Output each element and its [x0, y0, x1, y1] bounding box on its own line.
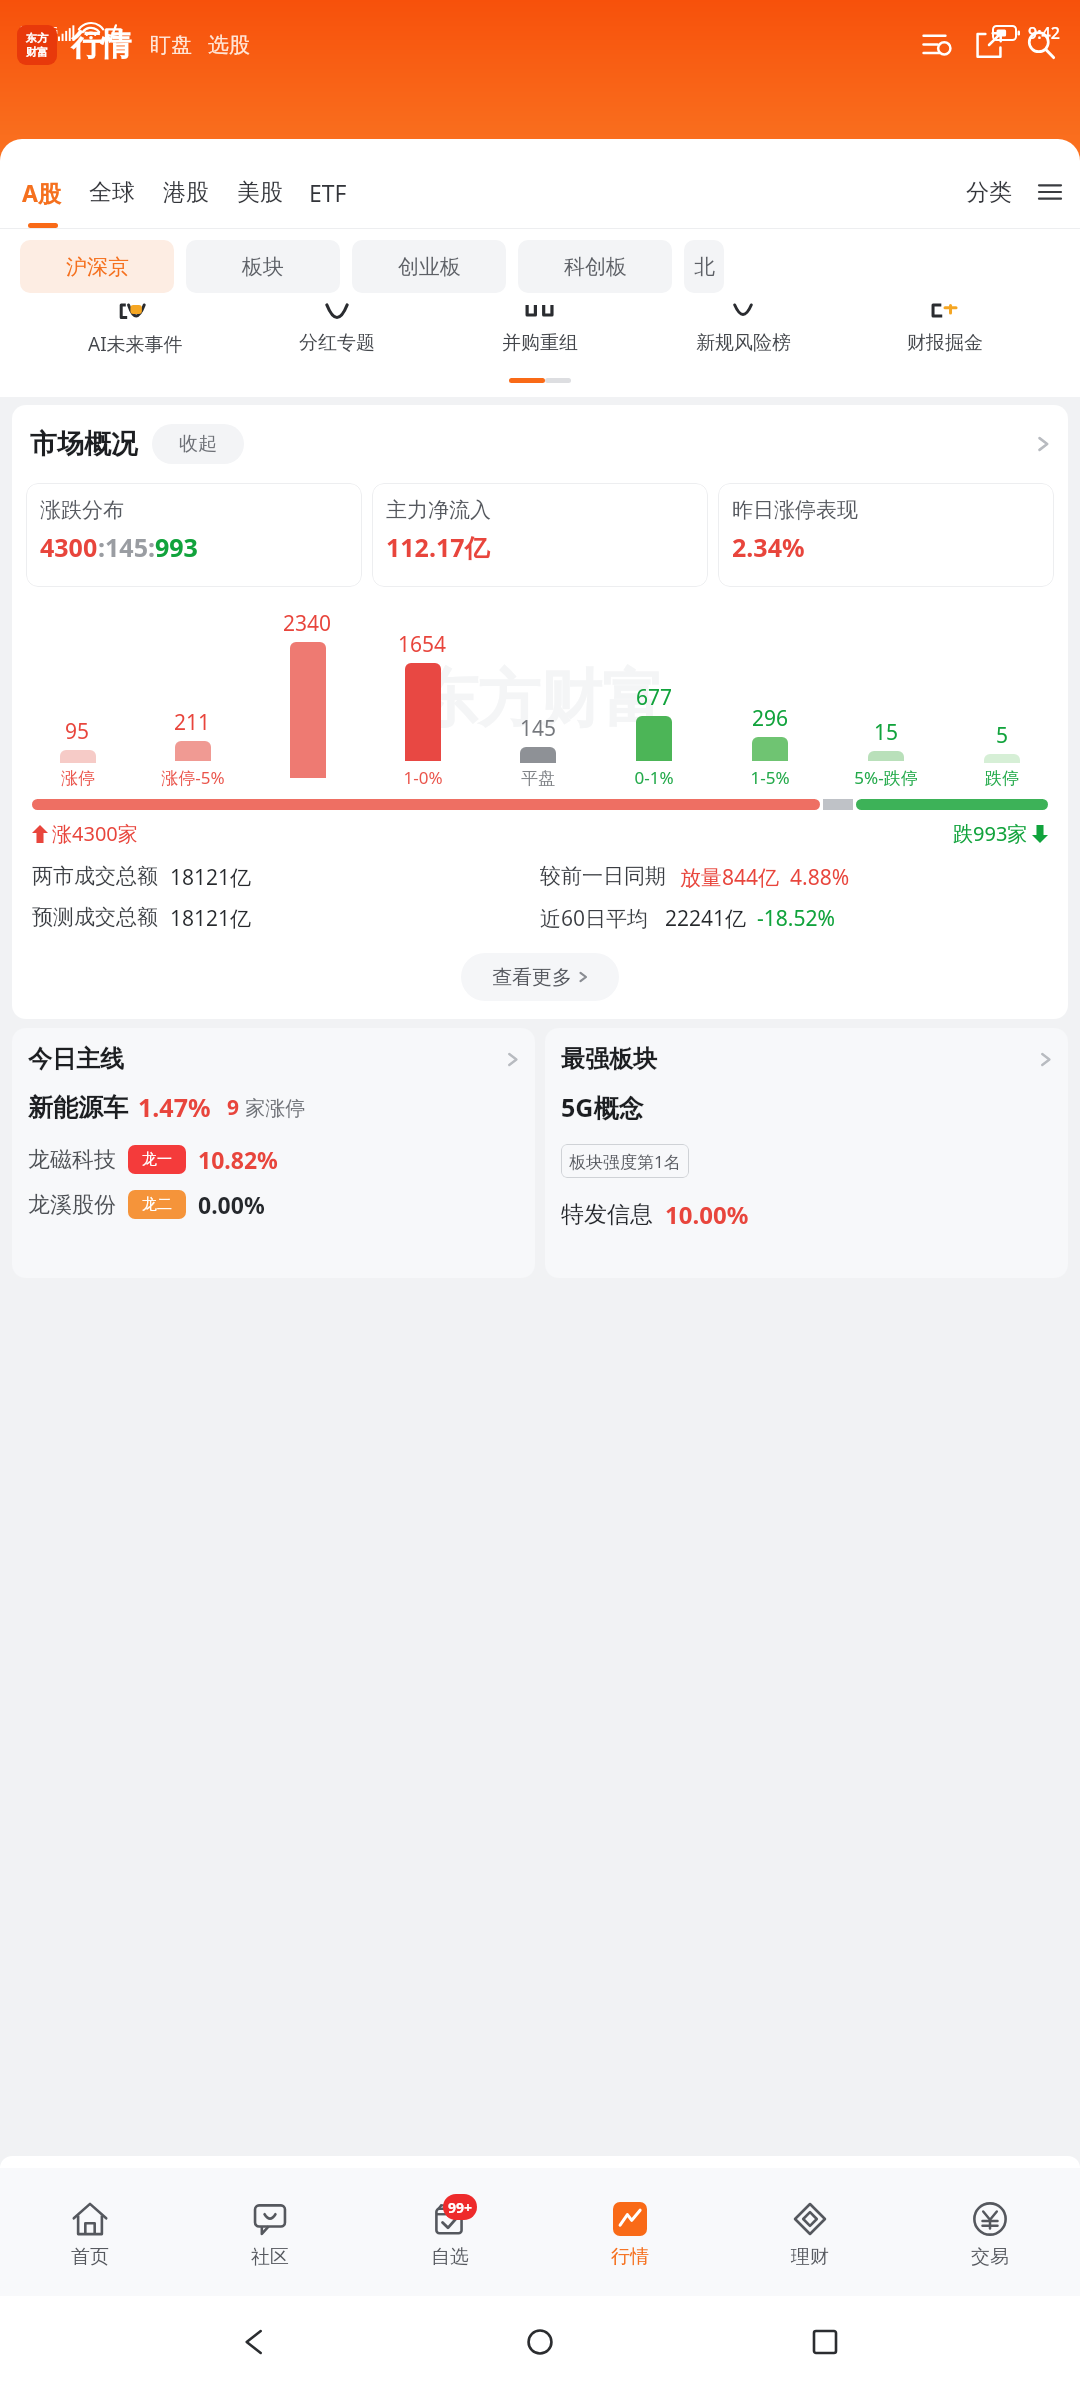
button[interactable]: 东方 — [17, 25, 57, 65]
staticText: 1-0% — [403, 766, 443, 789]
staticText: 跌停 — [985, 768, 1019, 789]
staticText: 涨4300家 — [52, 820, 138, 847]
staticText: 创业板 — [398, 254, 461, 280]
staticText: 跌993家 — [953, 820, 1028, 847]
staticText: 财报掘金 — [907, 331, 983, 355]
button[interactable]: 99+ — [360, 2168, 540, 2296]
button[interactable]: 主力净流入 — [372, 483, 708, 587]
button[interactable]: 收起 — [152, 424, 244, 464]
staticText: 10.82% — [198, 1144, 278, 1175]
staticText: 较前一日同期 — [540, 863, 666, 889]
staticText: 首页 — [71, 2245, 109, 2269]
staticText: 家涨停 — [240, 1094, 306, 1121]
staticText: 并购重组 — [502, 331, 578, 355]
button[interactable]: 科创板 — [518, 240, 672, 293]
button[interactable]: 市场概况 — [30, 405, 1050, 483]
staticText: 放量844亿 — [680, 863, 780, 892]
button[interactable]: 最强板块 — [545, 1028, 1068, 1278]
button[interactable]: 今日主线 — [12, 1028, 535, 1278]
staticText: 211 — [174, 708, 211, 737]
staticText: 预测成交总额 — [32, 904, 158, 930]
staticText: 科创板 — [564, 254, 627, 280]
button[interactable]: 行情 — [71, 26, 131, 64]
button[interactable]: Share — [967, 23, 1011, 67]
staticText: 10.00% — [665, 1198, 749, 1231]
button[interactable]: AI未来事件 — [67, 305, 203, 357]
staticText: 东方 — [26, 31, 48, 45]
staticText: 市场概况 — [30, 427, 138, 461]
staticText: 新能源车 — [28, 1092, 128, 1123]
staticText: :145: — [98, 530, 155, 564]
button[interactable]: 板块 — [186, 240, 340, 293]
staticText: ETF — [309, 177, 347, 208]
staticText: 沪深京 — [66, 254, 129, 280]
button[interactable]: 查看更多 — [461, 953, 619, 1001]
button[interactable]: Recents — [795, 2312, 855, 2372]
staticText: 板块 — [242, 254, 284, 280]
button[interactable]: Back — [225, 2312, 285, 2372]
staticText: -18.52% — [757, 904, 835, 933]
staticText: 最强板块 — [561, 1044, 657, 1074]
button[interactable]: 社区 — [180, 2168, 360, 2296]
staticText: HD — [25, 28, 37, 39]
button[interactable]: More tabs — [1030, 172, 1070, 212]
button[interactable]: 昨日涨停表现 — [718, 483, 1054, 587]
button[interactable]: 全球 — [89, 178, 135, 207]
staticText: 5G — [46, 24, 58, 36]
staticText: 95 — [65, 717, 90, 746]
staticText: 5 — [996, 721, 1009, 750]
staticText: 18121亿 — [170, 863, 252, 892]
staticText: 北 — [694, 254, 715, 280]
button[interactable]: 并购重组 — [472, 305, 608, 355]
staticText: 1-5% — [750, 766, 790, 789]
button[interactable]: Home — [510, 2312, 570, 2372]
button[interactable]: A股 — [22, 177, 61, 208]
staticText: 涨停 — [61, 768, 95, 789]
staticText: 东方财富 — [416, 660, 664, 738]
staticText: 两市成交总额 — [32, 863, 158, 889]
button[interactable]: 北 — [684, 240, 724, 293]
button[interactable]: 理财 — [720, 2168, 900, 2296]
button[interactable]: 交易 — [900, 2168, 1080, 2296]
staticText: 今日主线 — [28, 1044, 124, 1074]
button[interactable]: 分类 — [966, 178, 1012, 207]
staticText: 5G概念 — [561, 1090, 644, 1124]
button[interactable]: ETF — [309, 177, 347, 208]
staticText: 板块强度第1名 — [569, 1150, 681, 1173]
button[interactable]: 分红专题 — [269, 305, 405, 355]
staticText: 平盘 — [521, 768, 555, 789]
staticText: 112.17亿 — [386, 530, 490, 564]
button[interactable]: 涨跌分布 — [26, 483, 362, 587]
staticText: 理财 — [791, 2245, 829, 2269]
button[interactable]: 沪深京 — [20, 240, 174, 293]
button[interactable]: 行情 — [540, 2168, 720, 2296]
staticText: 财富 — [26, 45, 48, 59]
button[interactable]: 美股 — [237, 178, 283, 207]
button[interactable]: 首页 — [0, 2168, 180, 2296]
staticText: 自选 — [431, 2245, 469, 2269]
staticText: 993 — [155, 530, 198, 564]
staticText: 查看更多 — [492, 965, 572, 990]
staticText: 22241亿 — [665, 904, 747, 933]
staticText: 涨停-5% — [161, 766, 225, 789]
staticText: 全球 — [89, 178, 135, 207]
staticText: 港股 — [163, 178, 209, 207]
button[interactable]: 新规风险榜 — [675, 305, 811, 355]
staticText: 收起 — [179, 432, 217, 456]
staticText: 0.00% — [198, 1189, 265, 1220]
button[interactable]: Settings — [915, 23, 959, 67]
button[interactable]: Search — [1019, 23, 1063, 67]
staticText: 4.88% — [790, 863, 850, 892]
staticText: 昨日涨停表现 — [732, 497, 858, 523]
button[interactable]: 港股 — [163, 178, 209, 207]
button[interactable]: 创业板 — [352, 240, 506, 293]
button[interactable]: 选股 — [208, 32, 250, 58]
staticText: 18121亿 — [170, 904, 252, 933]
staticText: 龙二 — [142, 1195, 172, 1214]
button[interactable]: 财报掘金 — [877, 305, 1013, 355]
staticText: 9:42 — [1028, 22, 1060, 44]
staticText: 主力净流入 — [386, 497, 491, 523]
staticText: A股 — [22, 177, 61, 208]
button[interactable]: 盯盘 — [150, 32, 192, 58]
